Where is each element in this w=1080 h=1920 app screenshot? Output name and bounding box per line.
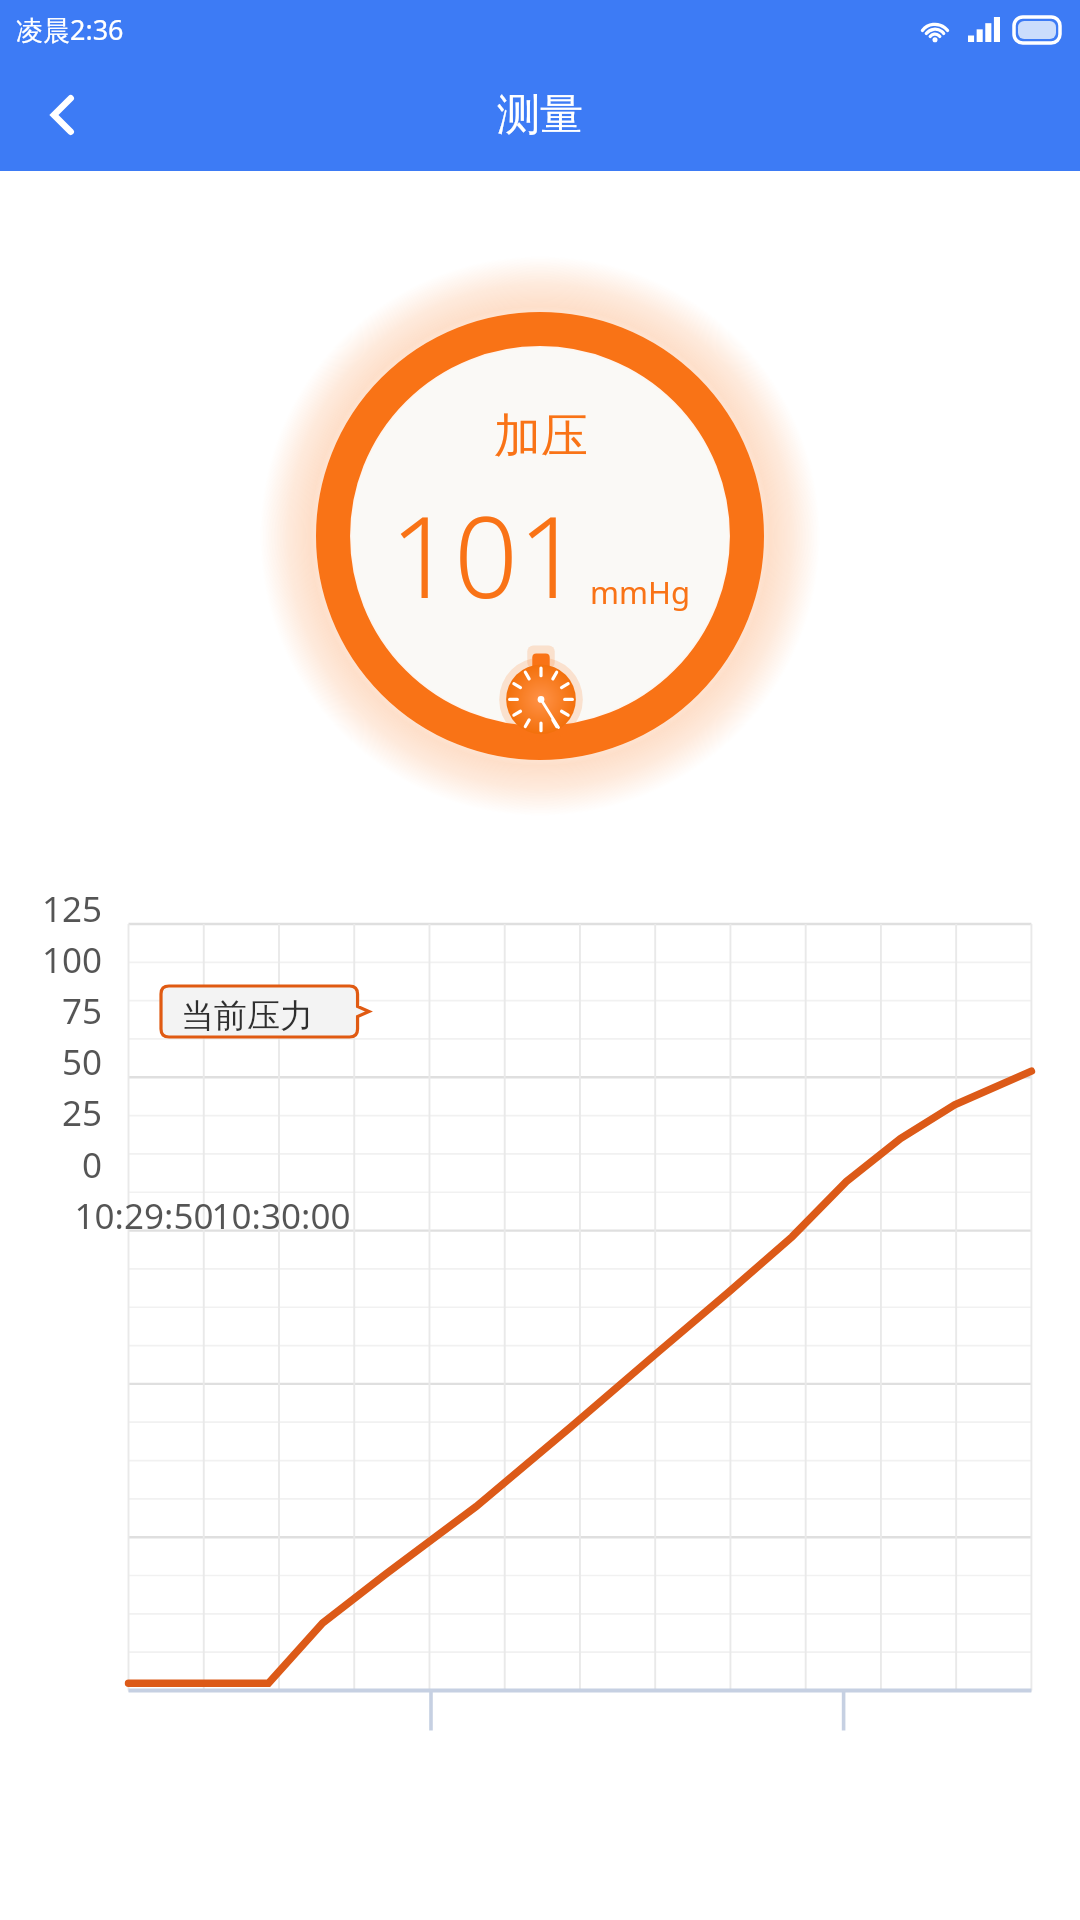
staticText: 0 [0,1141,102,1189]
staticText: 加压 [494,407,588,466]
staticText: 10:30:00 [181,1192,381,1240]
staticText: 75 [0,987,102,1035]
staticText: 101 [390,478,582,631]
button[interactable]: 当前压力 [161,986,369,1037]
staticText: 当前压力 [181,995,313,1037]
staticText: mmHg [590,571,691,613]
button[interactable]: Back [20,71,108,159]
staticText: 50 [0,1038,102,1086]
staticText: 10:29:50 [44,1192,244,1240]
staticText: 125 [0,885,102,933]
staticText: 测量 [497,88,583,142]
staticText: 25 [0,1089,102,1137]
staticText: 凌晨2:36 [16,11,124,48]
staticText: 100 [0,936,102,984]
